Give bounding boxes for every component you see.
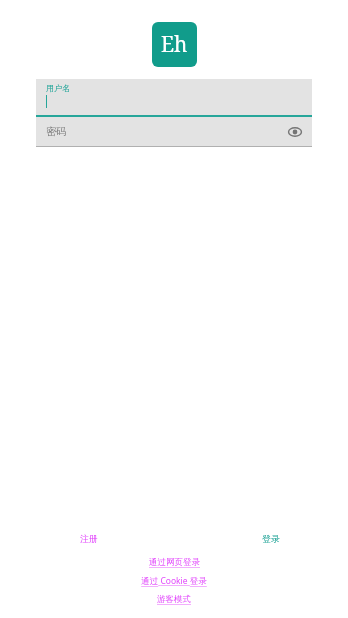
button[interactable]: 密码	[36, 117, 312, 147]
staticText: 游客模式	[157, 594, 191, 605]
button[interactable]: 用户名	[36, 79, 312, 117]
staticText: 用户名	[46, 83, 70, 93]
staticText: 通过网页登录	[149, 557, 200, 568]
staticText: 通过 Cookie 登录	[141, 575, 207, 587]
staticText: 登录	[262, 533, 280, 544]
button[interactable]: Show password	[286, 123, 304, 141]
button[interactable]: 通过网页登录	[145, 556, 204, 569]
staticText: Eh	[161, 30, 188, 59]
button[interactable]: 通过 Cookie 登录	[137, 574, 211, 588]
staticText: 密码	[46, 125, 66, 138]
button[interactable]: 登录	[256, 530, 286, 547]
button[interactable]: 游客模式	[153, 593, 195, 606]
button[interactable]: 注册	[74, 530, 104, 547]
staticText: 注册	[80, 533, 98, 544]
